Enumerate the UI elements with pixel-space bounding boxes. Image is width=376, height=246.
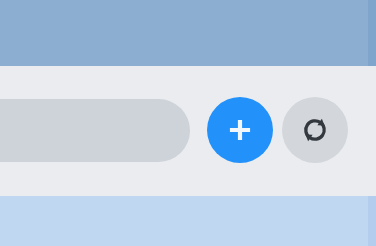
button[interactable] bbox=[0, 99, 190, 162]
button[interactable]: Add bbox=[207, 97, 273, 163]
button[interactable]: Refresh bbox=[282, 97, 348, 163]
